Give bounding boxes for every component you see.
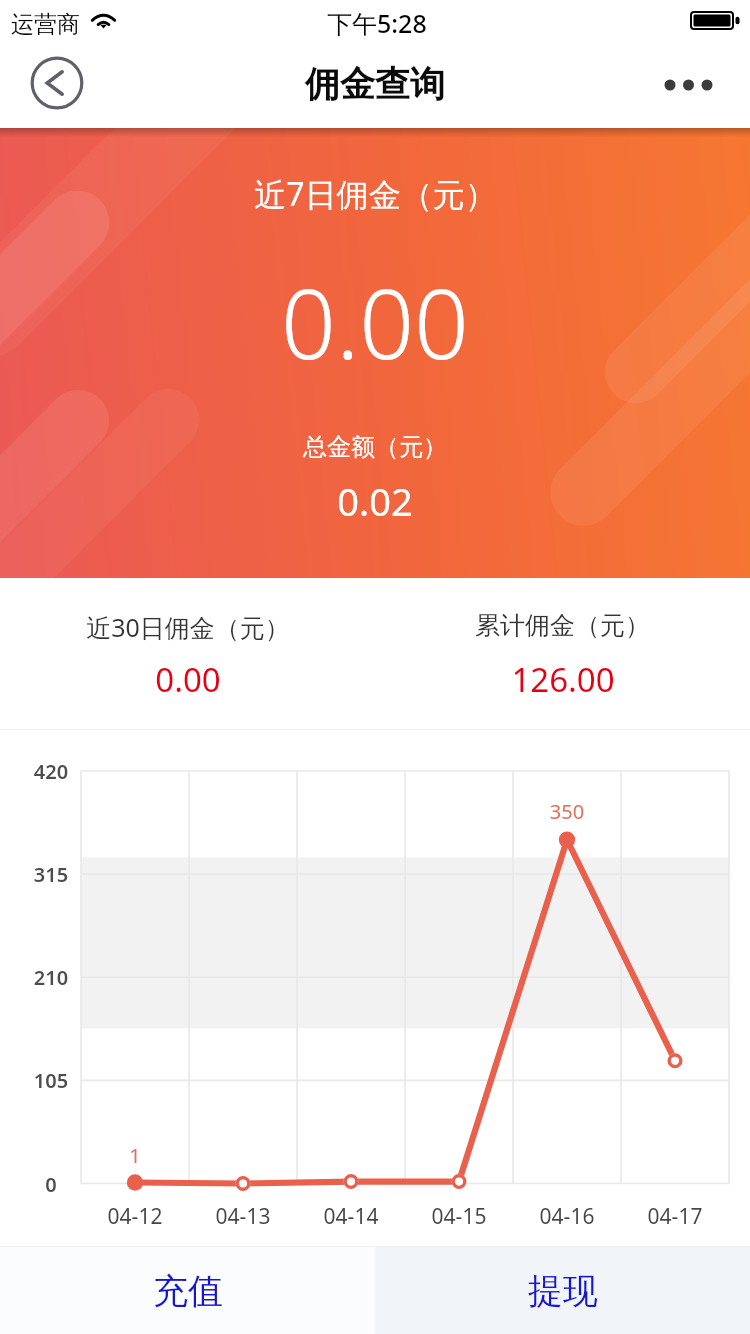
staticText: 1 [75,1142,195,1169]
staticText: 04-12 [75,1202,195,1231]
staticText: 提现 [528,1269,598,1313]
staticText: 佣金查询 [305,62,445,106]
staticText: 04-16 [507,1202,627,1231]
staticText: 210 [11,964,91,991]
button[interactable]: 充值 [0,1247,375,1334]
staticText: 420 [11,758,91,785]
button[interactable]: 累计佣金（元） [375,578,750,729]
staticText: 315 [11,861,91,888]
staticText: 近7日佣金（元） [254,172,497,216]
staticText: 近30日佣金（元） [86,610,290,644]
staticText: 04-14 [291,1202,411,1231]
staticText: 0.00 [155,657,221,702]
staticText: 累计佣金（元） [475,610,650,641]
button[interactable]: More options [648,56,728,112]
button[interactable]: Back [24,50,90,116]
staticText: 04-17 [615,1202,735,1231]
staticText: 总金额（元） [303,432,447,462]
staticText: 0 [11,1171,91,1198]
staticText: 下午5:28 [327,6,427,40]
staticText: 0.00 [281,256,469,387]
staticText: 04-13 [183,1202,303,1231]
staticText: 126.00 [511,657,615,702]
button[interactable]: 近30日佣金（元） [0,578,375,729]
staticText: 350 [507,798,627,825]
staticText: 充值 [153,1269,223,1313]
staticText: 0.02 [337,475,413,527]
staticText: 04-15 [399,1202,519,1231]
button[interactable]: 提现 [375,1247,750,1334]
staticText: 105 [11,1067,91,1094]
staticText: 运营商 [11,10,80,39]
